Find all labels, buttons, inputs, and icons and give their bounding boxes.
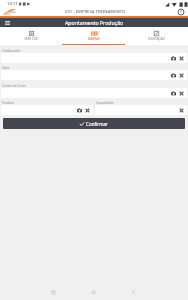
staticText: Centro de Custo [2,84,27,88]
staticText: Apontamento Produção [65,19,124,26]
button[interactable]: SEM CÓD [0,27,62,45]
button[interactable]: Clear field [177,71,185,79]
button[interactable]: Scan with camera [169,71,177,79]
staticText: Confirmar [86,121,108,127]
button[interactable]: Recent apps [40,285,67,299]
button[interactable]: Scan with camera [169,89,177,97]
button[interactable]: Scan with camera [75,106,83,114]
staticText: DIGITAÇÃO [148,37,165,41]
button[interactable]: Scan with camera [1,53,187,63]
button[interactable]: Clear field [177,89,185,97]
button[interactable]: Scan with camera [1,88,187,98]
button[interactable]: Scan with camera [169,54,177,62]
button[interactable]: BARRAS [62,27,125,45]
button[interactable]: Scan with camera [1,70,187,80]
button[interactable]: Open navigation menu [0,18,14,27]
button[interactable]: Clear field [177,54,185,62]
button[interactable]: Back [120,285,147,299]
staticText: Quantidade [96,101,114,105]
button[interactable]: Home [80,285,107,299]
staticText: Colaborador [2,49,21,53]
staticText: 10:11 [7,1,18,7]
staticText: BARRAS [88,37,100,41]
button[interactable]: Clear field [177,106,185,114]
button[interactable]: Clear field [95,105,187,115]
button[interactable]: Scan with camera [1,105,93,115]
staticText: 001 - EMPRESA TREINAMENTO [65,9,126,15]
button[interactable]: Clear field [83,106,91,114]
button[interactable]: DIGITAÇÃO [125,27,188,45]
button[interactable]: Sync [175,8,186,16]
staticText: Data [2,66,10,70]
button[interactable]: Confirmar [3,118,185,129]
staticText: SEM CÓD [24,37,39,41]
staticText: Produto [2,101,15,105]
